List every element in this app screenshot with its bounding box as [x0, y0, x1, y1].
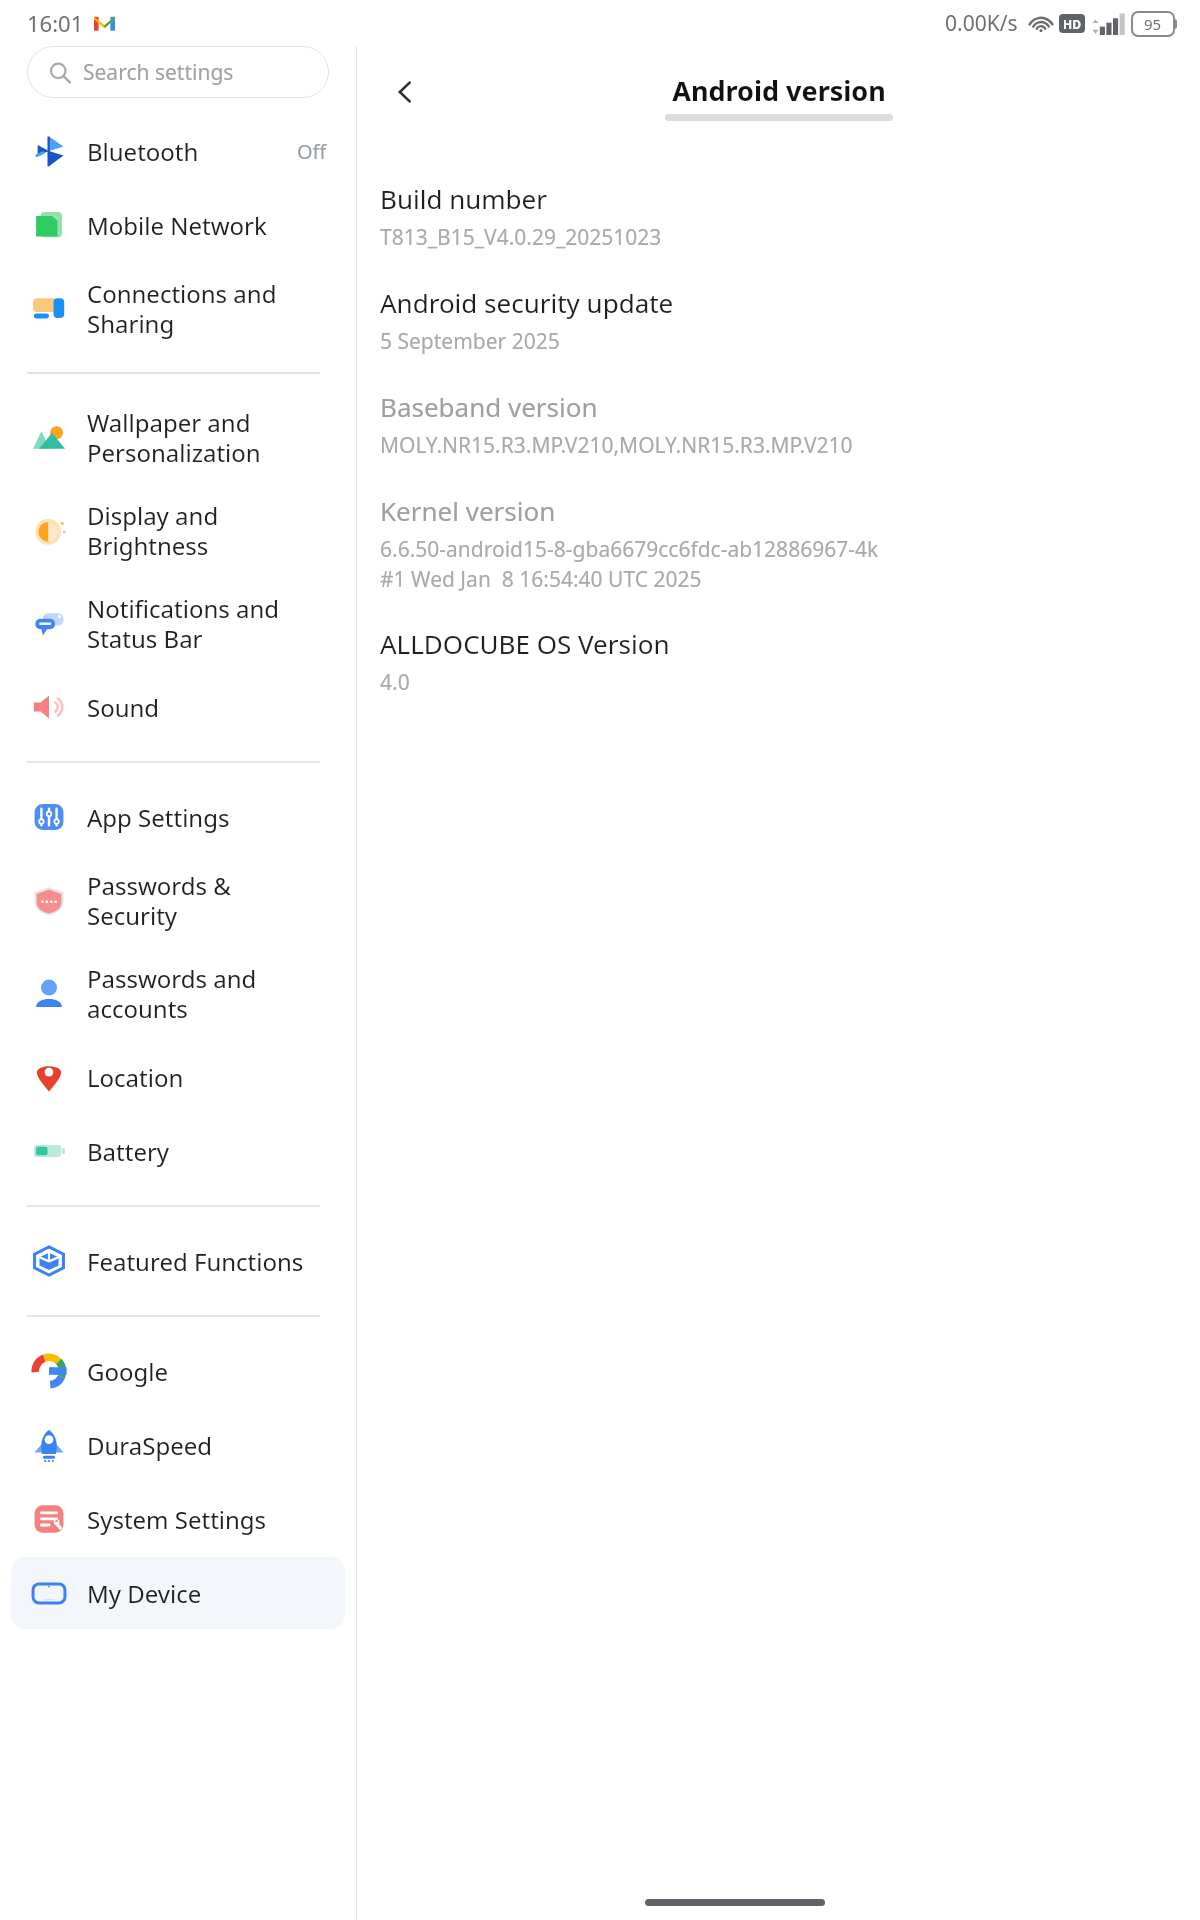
- button[interactable]: ALLDOCUBE OS Version: [357, 626, 1200, 697]
- button[interactable]: DuraSpeed: [11, 1409, 345, 1481]
- staticText: Search settings: [83, 58, 234, 87]
- staticText: Google: [87, 1355, 327, 1388]
- button[interactable]: Build number: [357, 181, 1200, 252]
- staticText: My Device: [87, 1577, 327, 1610]
- staticText: Wallpaper and Personalization: [87, 406, 327, 469]
- staticText: Connections and Sharing: [87, 277, 327, 340]
- button[interactable]: Notifications and Status Bar: [11, 578, 345, 669]
- button[interactable]: Baseband version: [357, 389, 1200, 460]
- staticText: Notifications and Status Bar: [87, 592, 327, 655]
- staticText: 16:01: [27, 8, 84, 38]
- button[interactable]: Kernel version: [357, 493, 1200, 593]
- button[interactable]: Featured Functions: [11, 1225, 345, 1297]
- staticText: MOLY.NR15.R3.MP.V210,MOLY.NR15.R3.MP.V21…: [380, 431, 853, 460]
- staticText: Android security update: [380, 285, 674, 320]
- staticText: App Settings: [87, 801, 327, 834]
- staticText: Build number: [380, 181, 547, 216]
- button[interactable]: Battery: [11, 1115, 345, 1187]
- staticText: Featured Functions: [87, 1245, 327, 1278]
- staticText: Passwords and accounts: [87, 962, 327, 1025]
- staticText: Battery: [87, 1135, 327, 1168]
- staticText: Off: [297, 138, 327, 165]
- staticText: 5 September 2025: [380, 327, 560, 356]
- button[interactable]: Location: [11, 1041, 345, 1113]
- button[interactable]: Back: [377, 64, 433, 120]
- button[interactable]: App Settings: [11, 781, 345, 853]
- staticText: Bluetooth: [87, 135, 297, 168]
- staticText: Kernel version: [380, 493, 556, 528]
- staticText: Mobile Network: [87, 209, 327, 242]
- button[interactable]: Android security update: [357, 285, 1200, 356]
- staticText: 4.0: [380, 668, 410, 697]
- staticText: Display and Brightness: [87, 499, 327, 562]
- button[interactable]: Google: [11, 1335, 345, 1407]
- staticText: Sound: [87, 691, 327, 724]
- button[interactable]: System Settings: [11, 1483, 345, 1555]
- button[interactable]: My Device: [11, 1557, 345, 1629]
- staticText: HD: [1063, 16, 1081, 32]
- button[interactable]: Bluetooth: [11, 115, 345, 187]
- staticText: Baseband version: [380, 389, 598, 424]
- staticText: 0.00K/s: [945, 9, 1018, 38]
- staticText: Location: [87, 1061, 327, 1094]
- button[interactable]: Wallpaper and Personalization: [11, 392, 345, 483]
- button[interactable]: Sound: [11, 671, 345, 743]
- button[interactable]: Connections and Sharing: [11, 263, 345, 354]
- button[interactable]: Passwords and accounts: [11, 948, 345, 1039]
- button[interactable]: Passwords & Security: [11, 855, 345, 946]
- button[interactable]: Mobile Network: [11, 189, 345, 261]
- staticText: ALLDOCUBE OS Version: [380, 626, 670, 661]
- staticText: System Settings: [87, 1503, 327, 1536]
- button[interactable]: Display and Brightness: [11, 485, 345, 576]
- staticText: 6.6.50-android15-8-gba6679cc6fdc-ab12886…: [380, 535, 879, 593]
- staticText: DuraSpeed: [87, 1429, 327, 1462]
- staticText: Passwords & Security: [87, 869, 327, 932]
- staticText: T813_B15_V4.0.29_20251023: [380, 223, 662, 252]
- staticText: Android version: [672, 72, 886, 109]
- button[interactable]: Search settings: [27, 46, 329, 98]
- staticText: 95: [1144, 14, 1162, 34]
